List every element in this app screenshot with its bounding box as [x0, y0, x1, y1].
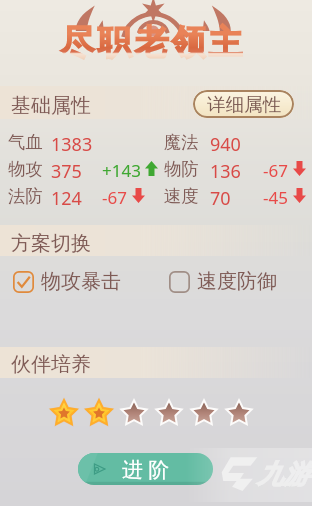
staticText: 速度 [164, 185, 199, 207]
staticText: 法防 [8, 185, 43, 207]
staticText: 物攻 [8, 158, 43, 180]
staticText: 伙伴培养 [11, 352, 91, 377]
staticText: -67 [263, 159, 288, 182]
other: Advance [92, 462, 106, 476]
button[interactable]: 速度防御 [169, 269, 277, 294]
staticText: 124 [51, 186, 82, 211]
staticText: 基础属性 [11, 93, 91, 118]
staticText: 九游 [257, 458, 309, 491]
staticText: 速度防御 [197, 269, 277, 294]
staticText: 物攻暴击 [41, 269, 121, 294]
staticText: 1383 [51, 132, 93, 157]
button[interactable]: Advance [78, 453, 213, 485]
staticText: 尽职老领主 [59, 21, 244, 64]
staticText: 气血 [8, 131, 43, 153]
button[interactable]: 详细属性 [193, 90, 294, 118]
staticText: 方案切换 [11, 231, 91, 256]
staticText: 70 [210, 186, 231, 211]
staticText: 940 [210, 132, 241, 157]
staticText: -45 [263, 186, 288, 209]
staticText: +143 [102, 159, 141, 182]
staticText: -67 [102, 186, 127, 209]
staticText: 物防 [164, 158, 199, 180]
staticText: 详细属性 [207, 93, 281, 116]
staticText: 魔法 [164, 131, 199, 153]
staticText: 进 阶 [122, 455, 170, 484]
staticText: 136 [210, 159, 241, 184]
other: 9game watermark [221, 455, 258, 491]
button[interactable]: 物攻暴击 [13, 269, 121, 294]
staticText: 375 [51, 159, 82, 184]
